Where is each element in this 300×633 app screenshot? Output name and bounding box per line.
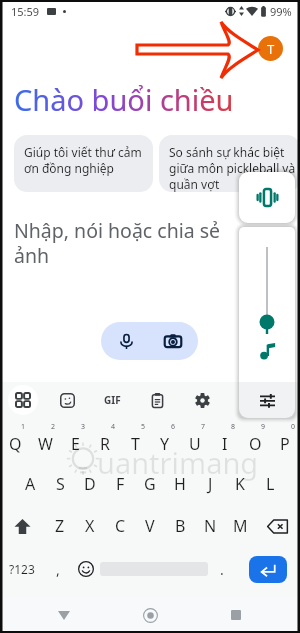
- button[interactable]: Emoji: [72, 547, 100, 591]
- button[interactable]: GIF: [90, 382, 135, 418]
- staticText: Nhập, nói hoặc chia sẻ ảnh: [14, 217, 224, 269]
- staticText: 15:59: [11, 4, 40, 19]
- button[interactable]: Stickers: [45, 382, 90, 418]
- button[interactable]: L: [255, 463, 285, 505]
- staticText: K: [235, 473, 245, 495]
- staticText: uantrimang: [97, 443, 259, 482]
- button[interactable]: S: [45, 463, 75, 505]
- button[interactable]: B: [165, 505, 195, 547]
- button[interactable]: 5: [120, 418, 150, 463]
- button[interactable]: ?123: [0, 547, 44, 591]
- button[interactable]: .: [208, 547, 236, 591]
- staticText: M: [233, 515, 248, 537]
- button[interactable]: Apps: [0, 382, 45, 418]
- staticText: R: [100, 433, 110, 455]
- staticText: 1: [21, 422, 26, 432]
- button[interactable]: A: [15, 463, 45, 505]
- staticText: J: [208, 473, 213, 495]
- staticText: P: [280, 433, 290, 455]
- staticText: E: [71, 433, 80, 455]
- button[interactable]: K: [225, 463, 255, 505]
- staticText: Q: [9, 433, 22, 455]
- button[interactable]: 7: [180, 418, 210, 463]
- staticText: Chào buổi chiều: [14, 80, 234, 119]
- button[interactable]: V: [135, 505, 165, 547]
- staticText: GIF: [104, 393, 121, 407]
- button[interactable]: 2: [30, 418, 60, 463]
- button[interactable]: Settings: [180, 382, 225, 418]
- staticText: 9: [261, 422, 266, 432]
- staticText: .: [220, 560, 224, 579]
- button[interactable]: 3: [60, 418, 90, 463]
- staticText: T: [267, 40, 275, 58]
- button[interactable]: Account: [258, 36, 283, 61]
- staticText: Z: [55, 515, 65, 537]
- button[interactable]: 1: [0, 418, 30, 463]
- button[interactable]: D: [75, 463, 105, 505]
- button[interactable]: Voice input: [104, 322, 148, 360]
- staticText: L: [266, 473, 275, 495]
- staticText: G: [144, 473, 156, 495]
- staticText: 8: [231, 422, 236, 432]
- button[interactable]: So sánh sự khác biệt giữa môn pickleball…: [159, 135, 300, 192]
- staticText: Y: [160, 433, 170, 455]
- staticText: 0: [291, 422, 296, 432]
- staticText: F: [116, 473, 125, 495]
- staticText: D: [84, 473, 96, 495]
- staticText: C: [115, 515, 126, 537]
- staticText: 2: [51, 422, 56, 432]
- button[interactable]: 4: [90, 418, 120, 463]
- button[interactable]: Ringer mode: [239, 172, 295, 223]
- button[interactable]: Space: [100, 547, 208, 591]
- staticText: N: [204, 515, 217, 537]
- staticText: 4: [111, 422, 116, 432]
- button[interactable]: 6: [150, 418, 180, 463]
- button[interactable]: Theme: [225, 382, 270, 418]
- staticText: H: [174, 473, 186, 495]
- staticText: Giúp tôi viết thư cảm ơn đồng nghiệp: [24, 144, 146, 176]
- staticText: A: [25, 473, 36, 495]
- button[interactable]: Backspace: [255, 505, 300, 547]
- staticText: 5: [141, 422, 146, 432]
- staticText: T: [131, 433, 140, 455]
- staticText: 7: [201, 422, 206, 432]
- button[interactable]: X: [75, 505, 105, 547]
- button[interactable]: 8: [210, 418, 240, 463]
- staticText: O: [249, 433, 262, 455]
- staticText: 3: [81, 422, 86, 432]
- button[interactable]: Clipboard: [135, 382, 180, 418]
- staticText: 6: [171, 422, 176, 432]
- staticText: V: [145, 515, 155, 537]
- button[interactable]: Enter: [236, 547, 300, 591]
- button[interactable]: Z: [45, 505, 75, 547]
- staticText: B: [175, 515, 186, 537]
- button[interactable]: C: [105, 505, 135, 547]
- staticText: ,: [56, 560, 60, 579]
- button[interactable]: 9: [240, 418, 270, 463]
- button[interactable]: H: [165, 463, 195, 505]
- button[interactable]: Back: [42, 597, 86, 633]
- staticText: X: [85, 515, 95, 537]
- button[interactable]: Recents: [214, 597, 258, 633]
- staticText: S: [56, 473, 65, 495]
- button[interactable]: 0: [270, 418, 300, 463]
- button[interactable]: Shift: [0, 505, 45, 547]
- button[interactable]: N: [195, 505, 225, 547]
- staticText: So sánh sự khác biệt giữa môn pickleball…: [169, 144, 300, 192]
- staticText: U: [189, 433, 201, 455]
- button[interactable]: M: [225, 505, 255, 547]
- button[interactable]: Home: [128, 597, 172, 633]
- staticText: 99%: [270, 4, 292, 19]
- button[interactable]: Giúp tôi viết thư cảm ơn đồng nghiệp: [14, 135, 153, 192]
- staticText: I: [222, 433, 228, 455]
- button[interactable]: Sound settings: [239, 382, 295, 418]
- button[interactable]: ,: [44, 547, 72, 591]
- staticText: W: [38, 433, 53, 455]
- button[interactable]: Camera: [151, 322, 195, 360]
- button[interactable]: J: [195, 463, 225, 505]
- button[interactable]: G: [135, 463, 165, 505]
- staticText: ?123: [9, 561, 35, 577]
- button[interactable]: F: [105, 463, 135, 505]
